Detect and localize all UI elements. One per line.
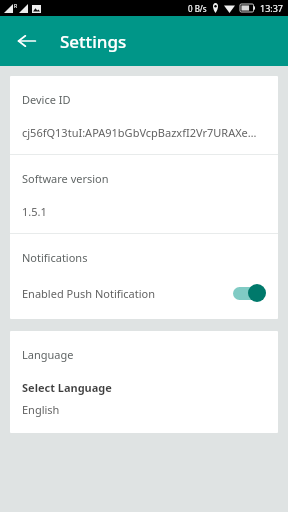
button[interactable]: Enabled Push Notification <box>10 283 278 315</box>
staticText: cj56fQ13tuI:APA91bGbVcpBazxfI2Vr7URAXe… <box>22 125 257 140</box>
staticText: Select Language <box>22 380 112 395</box>
staticText: Settings <box>60 30 127 53</box>
staticText: R <box>14 3 18 10</box>
staticText: Device ID <box>22 92 71 107</box>
staticText: Language <box>22 347 74 362</box>
button[interactable]: Enabled Push Notification toggle <box>230 283 266 303</box>
button[interactable]: Select Language <box>10 380 278 433</box>
button[interactable]: Back <box>8 22 46 60</box>
staticText: 1.5.1 <box>22 204 47 219</box>
staticText: English <box>22 402 60 417</box>
staticText: Enabled Push Notification <box>22 286 230 301</box>
staticText: 0 B/s <box>188 3 207 14</box>
staticText: Software version <box>22 171 109 186</box>
staticText: 13:37 <box>260 2 284 14</box>
staticText: Notifications <box>22 250 88 265</box>
